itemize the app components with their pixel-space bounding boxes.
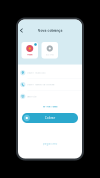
staticText: Descrição [27, 95, 36, 98]
staticText: Nova cobrança [37, 28, 62, 33]
button[interactable]: PAGAR [21, 42, 38, 58]
button[interactable]: Descrição [18, 91, 82, 102]
staticText: Cobrar [45, 116, 55, 120]
button[interactable]: Inserir número de telefone [18, 79, 82, 90]
button[interactable]: Cobrar [22, 113, 78, 123]
button[interactable]: AJUSTES [41, 42, 58, 58]
staticText: PAGAR [27, 53, 32, 56]
button[interactable]: Back [18, 27, 25, 34]
staticText: AJUSTES [46, 53, 54, 56]
staticText: Inserir número de telefone [27, 83, 54, 86]
staticText: pagar.me [42, 141, 57, 145]
staticText: Inserir município [27, 71, 45, 74]
button[interactable]: Inserir município [18, 67, 82, 78]
button[interactable]: Ver mais dados [41, 104, 59, 109]
staticText: Ver mais dados [42, 105, 57, 108]
